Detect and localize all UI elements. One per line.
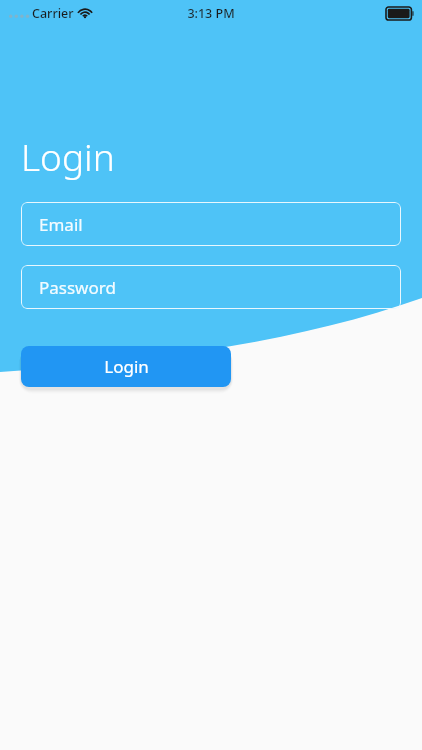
staticText: Carrier (32, 5, 74, 22)
button[interactable]: Password (21, 265, 401, 309)
button[interactable]: Email (21, 202, 401, 246)
staticText: Login (104, 355, 149, 378)
staticText: 3:13 PM (187, 5, 235, 22)
staticText: Email (39, 213, 83, 236)
staticText: Password (39, 276, 116, 299)
button[interactable]: Login (21, 346, 231, 387)
staticText: Login (21, 131, 115, 181)
